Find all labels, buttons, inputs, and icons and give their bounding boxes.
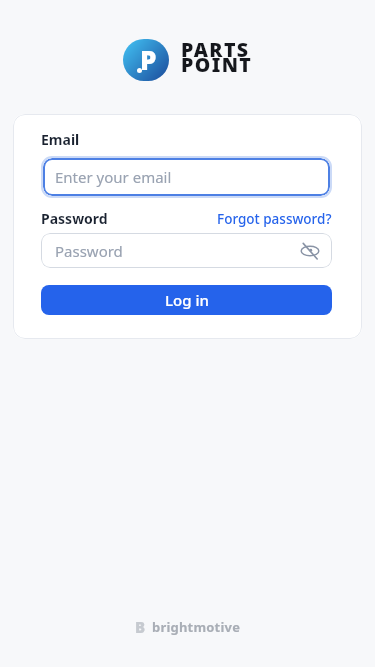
staticText: Password [41, 209, 108, 228]
button[interactable]: Log in [41, 285, 332, 315]
staticText: P [140, 42, 157, 77]
button[interactable]: Forgot password? [217, 210, 332, 228]
staticText: B [135, 617, 146, 637]
staticText: Enter your email [55, 167, 172, 187]
staticText: Password [55, 241, 123, 261]
button[interactable]: Password [41, 233, 332, 268]
staticText: POINT [181, 51, 253, 78]
button[interactable]: Enter your email [43, 158, 330, 196]
staticText: Email [41, 130, 80, 149]
staticText: brightmotive [152, 618, 241, 636]
staticText: PARTS [181, 36, 250, 63]
staticText: Log in [165, 290, 209, 310]
